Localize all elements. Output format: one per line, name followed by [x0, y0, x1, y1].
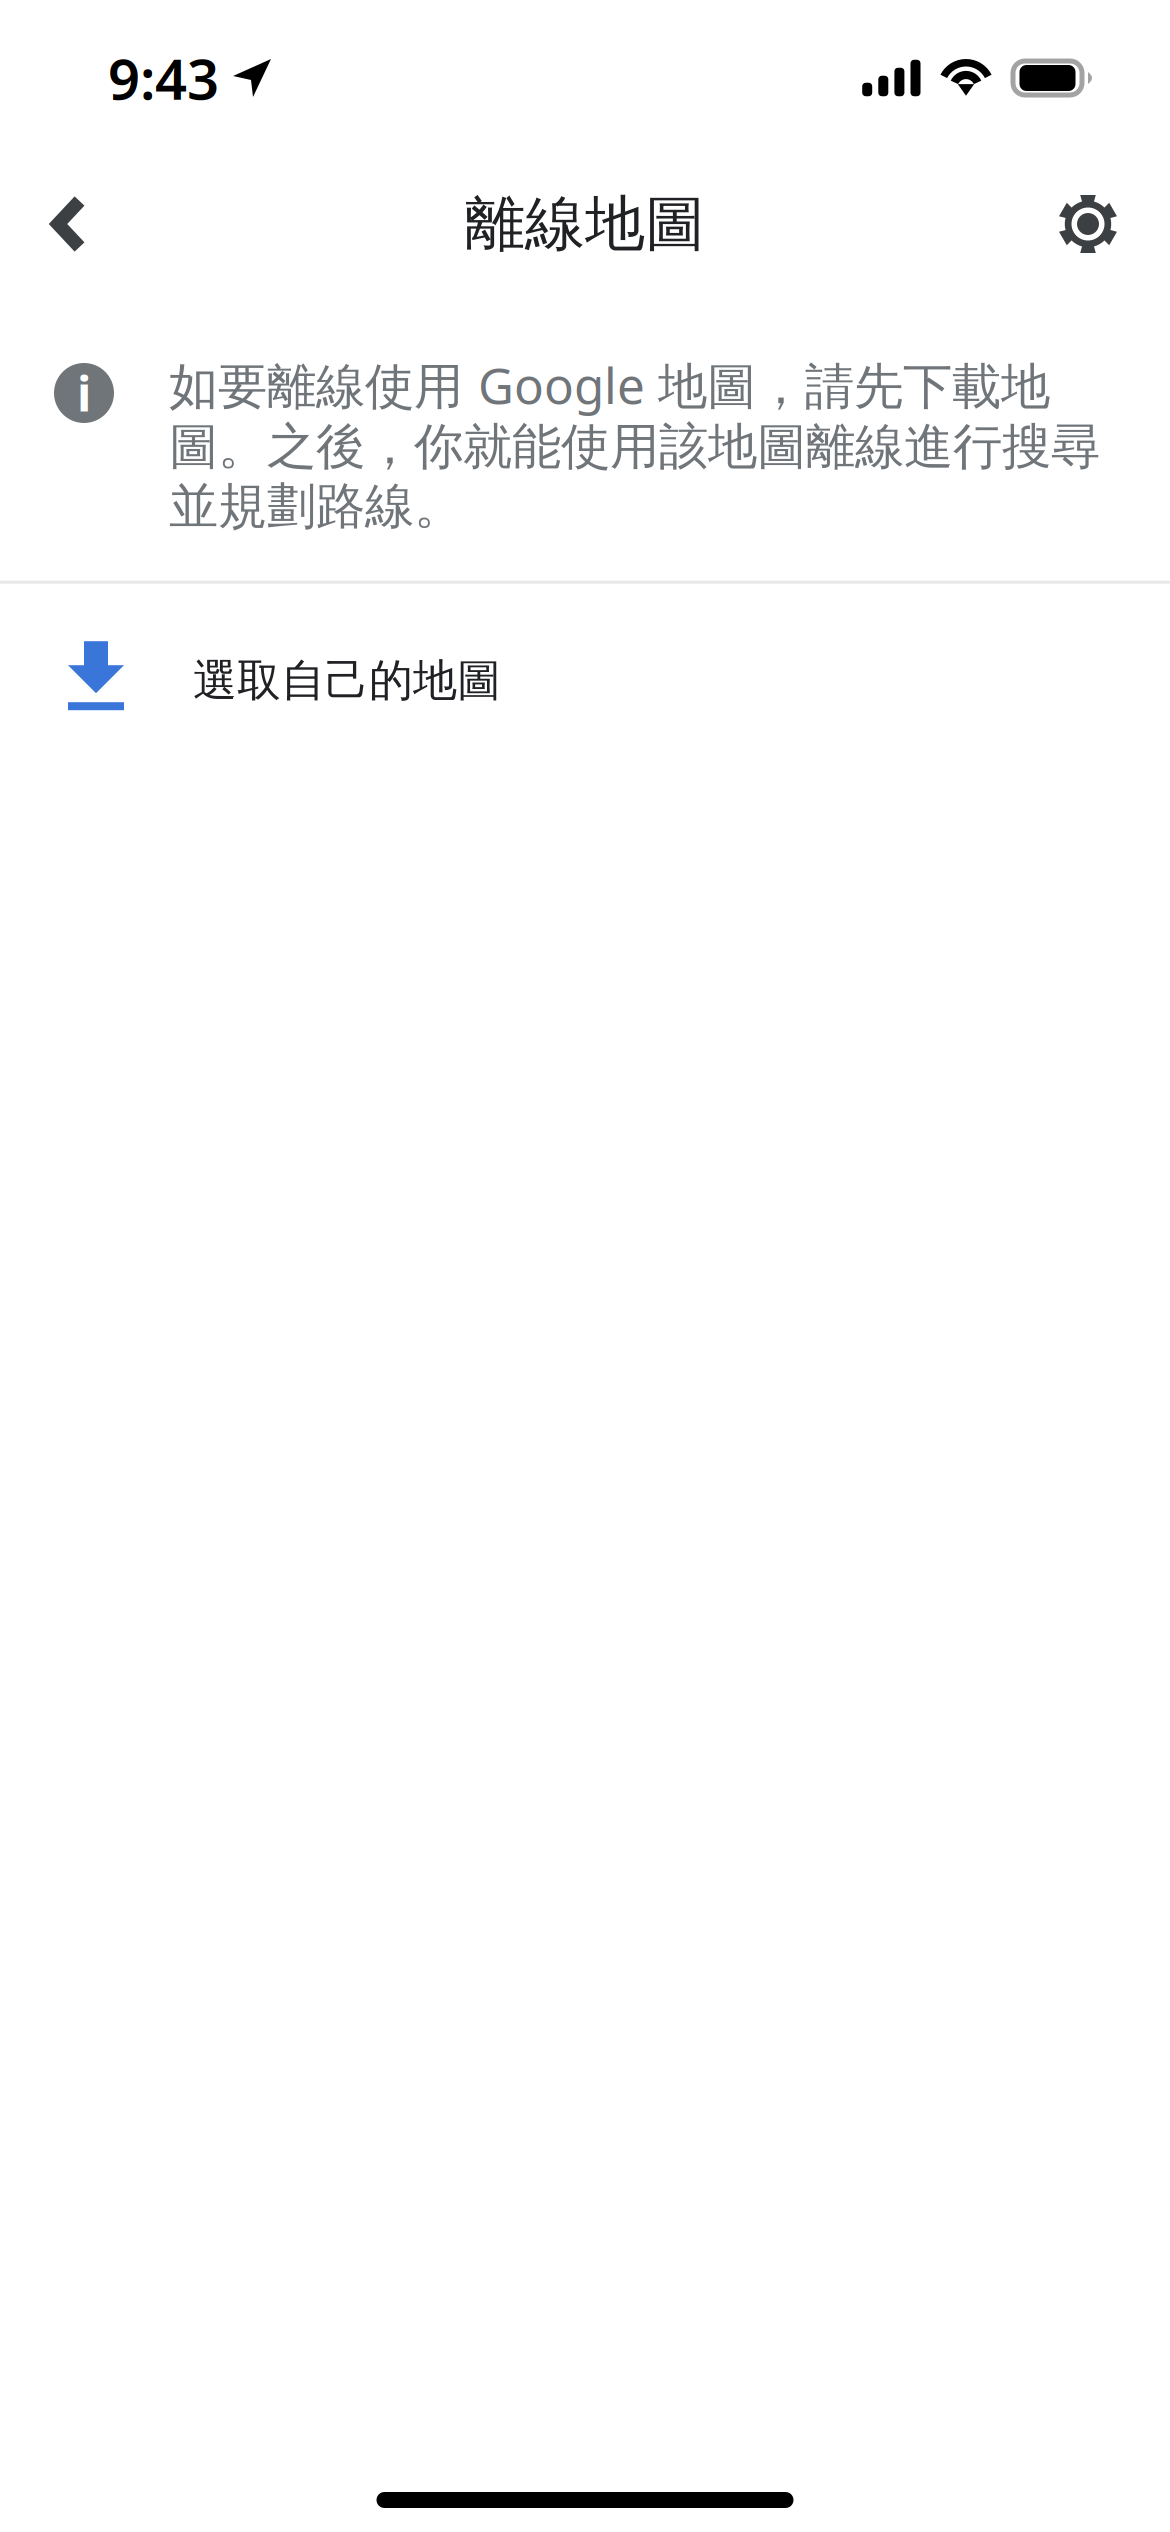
staticText: 選取自己的地圖 [193, 654, 501, 708]
button[interactable]: 返回 [14, 164, 124, 284]
staticText: 如要離線使用 Google 地圖，請先下載地圖。之後，你就能使用該地圖離線進行搜… [169, 352, 1100, 537]
button[interactable]: 選取自己的地圖 [0, 584, 1170, 768]
staticText: 9:43 [108, 41, 219, 115]
staticText: i [77, 361, 91, 425]
staticText: 離線地圖 [465, 187, 705, 261]
button[interactable]: 設定 [1033, 164, 1143, 284]
